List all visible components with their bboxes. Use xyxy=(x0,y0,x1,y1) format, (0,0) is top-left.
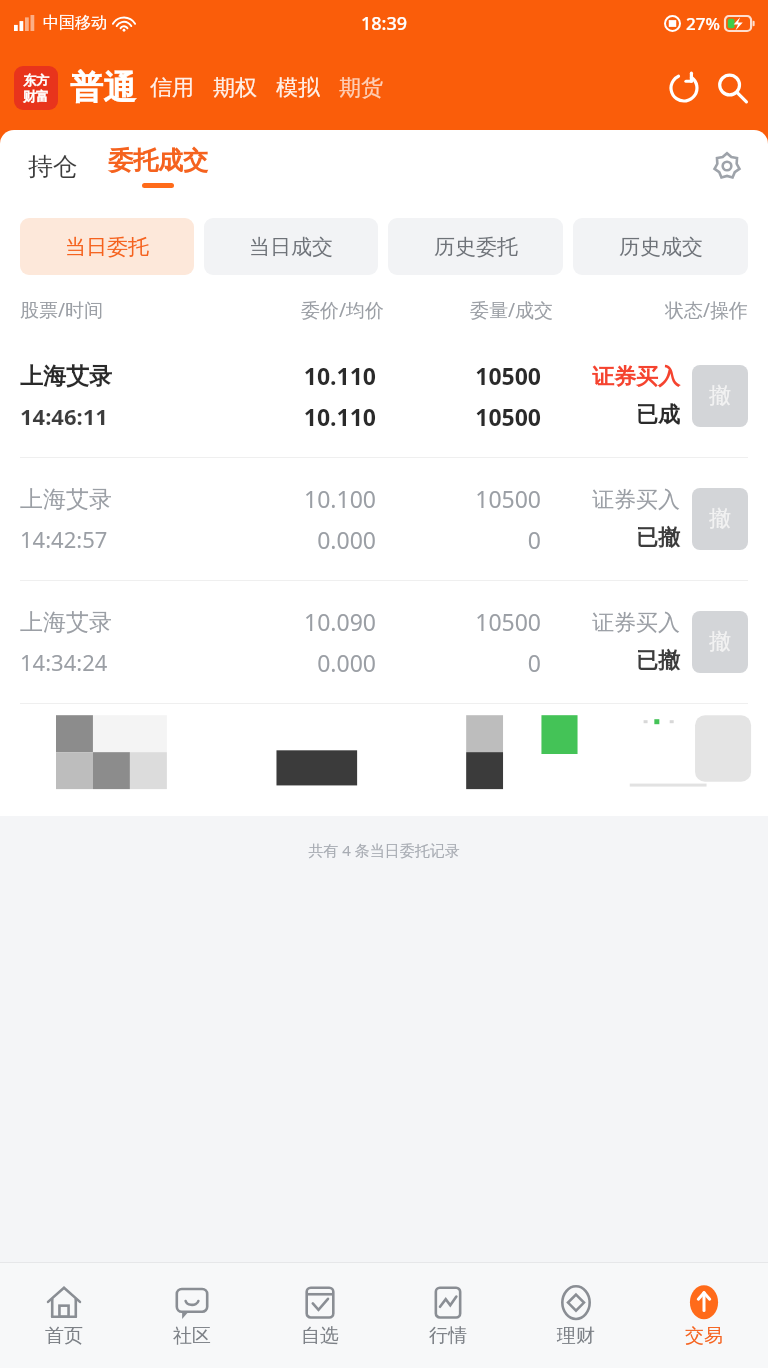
staticText: 东方 xyxy=(23,72,49,88)
button[interactable]: Refresh xyxy=(662,66,706,110)
staticText: 14:42:57 xyxy=(20,524,108,554)
button[interactable]: 历史成交 xyxy=(573,218,748,275)
staticText: 历史成交 xyxy=(619,234,703,260)
staticText: 自选 xyxy=(301,1324,339,1348)
staticText: 撤 xyxy=(709,628,731,656)
button[interactable]: 期货 xyxy=(339,74,383,102)
staticText: 0 xyxy=(527,647,541,678)
button[interactable]: 社区 xyxy=(128,1263,256,1368)
staticText: 状态/操作 xyxy=(553,297,748,323)
staticText: 10.100 xyxy=(304,483,376,514)
staticText: 10500 xyxy=(475,606,541,637)
button[interactable]: 首页 xyxy=(0,1263,128,1368)
button[interactable]: 撤 xyxy=(692,611,748,673)
button[interactable]: 委托成交 xyxy=(108,145,208,188)
staticText: 10500 xyxy=(475,360,541,391)
staticText: 证券买入 xyxy=(592,486,680,514)
staticText: 27% xyxy=(686,12,720,35)
staticText: 委托成交 xyxy=(108,145,208,176)
staticText: 社区 xyxy=(173,1324,211,1348)
button[interactable]: 上海艾录 xyxy=(0,335,768,457)
button[interactable]: 普通 xyxy=(70,67,136,109)
button[interactable]: 上海艾录 xyxy=(0,581,768,703)
staticText: 10.090 xyxy=(304,606,376,637)
staticText: 14:34:24 xyxy=(20,647,108,677)
staticText: 当日委托 xyxy=(65,234,149,260)
button[interactable]: 行情 xyxy=(384,1263,512,1368)
staticText: 已撤 xyxy=(636,647,680,675)
button[interactable]: 理财 xyxy=(512,1263,640,1368)
button[interactable]: 持仓 xyxy=(26,151,80,182)
button[interactable]: 上海艾录 xyxy=(0,458,768,580)
staticText: 10.110 xyxy=(303,401,376,432)
button[interactable]: 信用 xyxy=(150,74,194,102)
staticText: 上海艾录 xyxy=(20,362,112,391)
button[interactable]: Search xyxy=(710,66,754,110)
staticText: 委价/均价 xyxy=(215,297,384,323)
staticText: 10500 xyxy=(475,401,541,432)
button[interactable]: 东方财富 xyxy=(14,66,58,110)
staticText: 理财 xyxy=(557,1324,595,1348)
button[interactable]: 自选 xyxy=(256,1263,384,1368)
staticText: 0.000 xyxy=(317,647,376,678)
staticText: 撤 xyxy=(709,505,731,533)
button[interactable]: 当日委托 xyxy=(20,218,194,275)
staticText: 14:46:11 xyxy=(20,401,108,431)
staticText: 股票/时间 xyxy=(20,297,215,323)
staticText: 证券买入 xyxy=(592,363,680,391)
staticText: 上海艾录 xyxy=(20,485,112,514)
staticText: 交易 xyxy=(685,1324,723,1348)
button[interactable]: 当日成交 xyxy=(204,218,378,275)
staticText: 18:39 xyxy=(361,11,408,36)
button[interactable]: 期权 xyxy=(213,74,257,102)
staticText: 首页 xyxy=(45,1324,83,1348)
staticText: 已撤 xyxy=(636,524,680,552)
button[interactable]: Settings xyxy=(704,143,750,189)
staticText: 历史委托 xyxy=(434,234,518,260)
staticText: 撤 xyxy=(709,382,731,410)
staticText: 中国移动 xyxy=(43,13,107,33)
button[interactable]: 模拟 xyxy=(276,74,320,102)
staticText: 财富 xyxy=(23,88,49,104)
button[interactable]: 撤 xyxy=(692,488,748,550)
staticText: 10500 xyxy=(475,483,541,514)
button[interactable]: 历史委托 xyxy=(388,218,563,275)
button[interactable]: 撤 xyxy=(692,365,748,427)
staticText: 证券买入 xyxy=(592,609,680,637)
staticText: 行情 xyxy=(429,1324,467,1348)
staticText: 已成 xyxy=(636,401,680,429)
staticText: 0 xyxy=(527,524,541,555)
staticText: 0.000 xyxy=(317,524,376,555)
staticText: 共有 4 条当日委托记录 xyxy=(0,840,768,860)
staticText: 上海艾录 xyxy=(20,608,112,637)
staticText: 委量/成交 xyxy=(384,297,553,323)
button[interactable]: 交易 xyxy=(640,1263,768,1368)
staticText: 当日成交 xyxy=(249,234,333,260)
staticText: 10.110 xyxy=(303,360,376,391)
staticText: 持仓 xyxy=(28,151,78,182)
